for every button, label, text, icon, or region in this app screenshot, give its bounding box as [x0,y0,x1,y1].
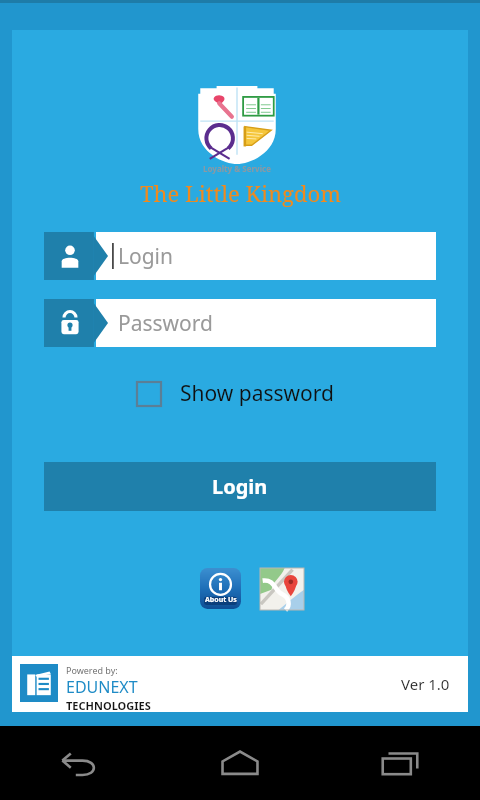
staticText: EDUNEXT [66,676,138,698]
staticText: Login [212,473,268,500]
staticText: Show password [180,379,334,408]
staticText: The Little Kingdom [140,178,341,208]
staticText: Powered by: [66,664,118,676]
staticText: Password [118,309,213,338]
staticText: About Us [205,595,237,605]
button[interactable]: Home [160,726,320,800]
staticText: Ver 1.0 [401,674,450,694]
button[interactable]: Show password [136,379,334,408]
button[interactable]: Recent apps [320,726,480,800]
staticText: TECHNOLOGIES [66,698,151,713]
button[interactable]: Login [44,232,436,280]
button[interactable]: Password [44,299,436,347]
button[interactable]: Login [44,462,436,511]
button[interactable]: About Us [200,568,241,609]
button[interactable]: Back [0,726,160,800]
button[interactable]: Open map location [260,568,304,610]
staticText: Loyalty & Service [203,163,271,174]
staticText: Login [118,242,174,271]
